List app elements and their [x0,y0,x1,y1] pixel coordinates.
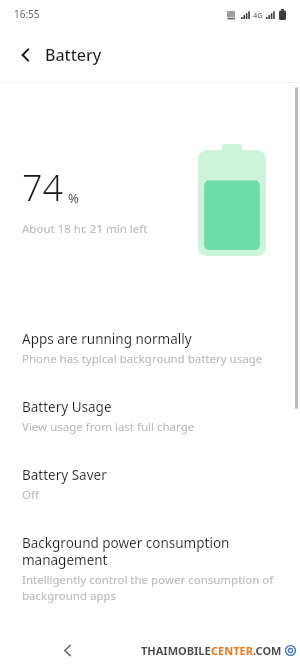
staticText: Intelligently control the power consumpt… [22,572,274,603]
staticText: 16:55 [14,7,40,21]
staticText: % [68,189,79,207]
button[interactable]: Apps are running normally [0,321,300,376]
staticText: Phone has typical background battery usa… [22,351,263,367]
button[interactable]: Back [10,39,42,71]
staticText: Battery [45,44,102,66]
button[interactable]: Back [50,633,84,667]
staticText: View usage from last full charge [22,419,195,435]
button[interactable]: Battery Saver [0,457,300,512]
staticText: Background power consumption management [22,534,230,569]
staticText: .COM [253,643,282,658]
button[interactable]: Battery Usage [0,389,300,444]
staticText: Battery Usage [22,398,112,416]
staticText: 4G [253,10,263,20]
staticText: About 18 hr, 21 min left [22,221,148,237]
button[interactable]: Background power consumption management [0,525,300,612]
staticText: Off [22,487,39,503]
staticText: Apps are running normally [22,330,192,348]
staticText: THAIMOBILE [141,643,211,658]
staticText: CENTER [211,643,253,658]
staticText: Battery Saver [22,466,107,484]
staticText: 74 [22,163,64,212]
